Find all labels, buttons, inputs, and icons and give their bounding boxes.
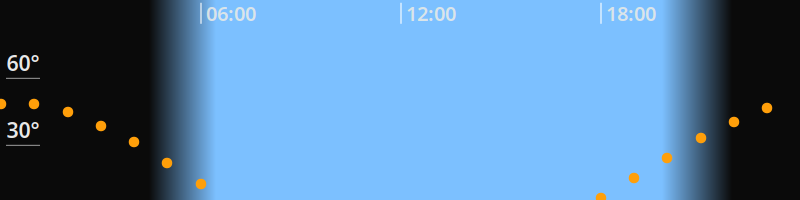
staticText: 06:00 [206, 0, 256, 27]
staticText: 30° [6, 115, 39, 144]
staticText: 18:00 [606, 0, 656, 27]
staticText: 12:00 [406, 0, 456, 27]
staticText: 60° [6, 48, 39, 77]
